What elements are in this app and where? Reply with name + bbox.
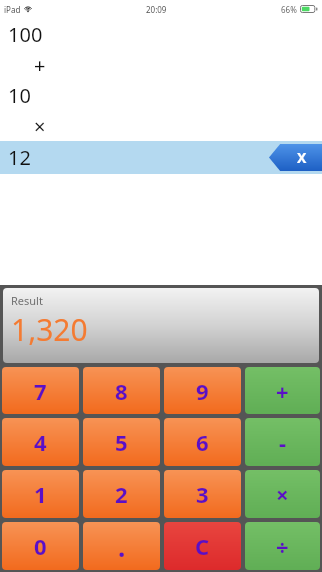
- staticText: 4: [34, 427, 47, 457]
- button[interactable]: 2: [83, 470, 160, 518]
- staticText: 1: [34, 479, 47, 509]
- staticText: 9: [196, 376, 209, 406]
- button[interactable]: 0: [2, 522, 79, 570]
- staticText: -: [279, 427, 287, 457]
- button[interactable]: 10: [0, 80, 322, 111]
- button[interactable]: 7: [2, 367, 79, 414]
- staticText: X: [297, 148, 307, 167]
- staticText: 8: [115, 376, 128, 406]
- button[interactable]: ×: [0, 111, 322, 141]
- staticText: Result: [11, 293, 43, 308]
- button[interactable]: 1: [2, 470, 79, 518]
- button[interactable]: 3: [164, 470, 241, 518]
- button[interactable]: Result: [3, 288, 319, 363]
- staticText: +: [34, 52, 46, 79]
- staticText: 7: [34, 376, 47, 406]
- button[interactable]: -: [245, 418, 320, 466]
- staticText: +: [276, 376, 289, 406]
- button[interactable]: 100: [0, 18, 322, 50]
- button[interactable]: Delete: [269, 141, 322, 174]
- staticText: ÷: [276, 531, 289, 561]
- staticText: 3: [196, 479, 209, 509]
- button[interactable]: .: [83, 522, 160, 570]
- button[interactable]: +: [0, 50, 322, 80]
- staticText: 1,320: [11, 309, 88, 350]
- staticText: 20:09: [146, 4, 167, 15]
- staticText: C: [195, 531, 210, 561]
- button[interactable]: 8: [83, 367, 160, 414]
- button[interactable]: +: [245, 367, 320, 414]
- staticText: 66%: [281, 4, 297, 15]
- button[interactable]: 12: [0, 141, 322, 174]
- button[interactable]: 5: [83, 418, 160, 466]
- staticText: 0: [34, 531, 47, 561]
- button[interactable]: 9: [164, 367, 241, 414]
- button[interactable]: ÷: [245, 522, 320, 570]
- staticText: .: [118, 529, 126, 564]
- staticText: 10: [8, 82, 31, 109]
- staticText: 12: [8, 144, 31, 171]
- staticText: 100: [8, 21, 43, 48]
- staticText: 6: [196, 427, 209, 457]
- staticText: 2: [115, 479, 128, 509]
- staticText: 5: [115, 427, 128, 457]
- button[interactable]: C: [164, 522, 241, 570]
- button[interactable]: 4: [2, 418, 79, 466]
- staticText: ×: [276, 479, 289, 509]
- button[interactable]: ×: [245, 470, 320, 518]
- staticText: iPad: [4, 4, 21, 15]
- button[interactable]: 6: [164, 418, 241, 466]
- staticText: ×: [34, 113, 46, 140]
